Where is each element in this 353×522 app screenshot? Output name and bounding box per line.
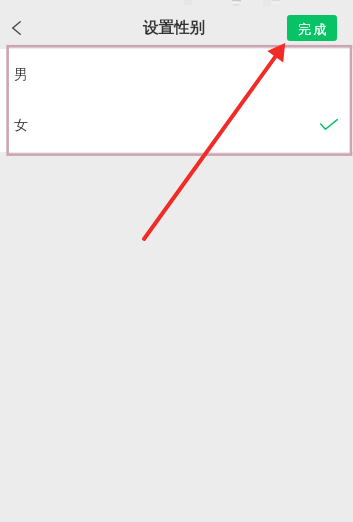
- staticText: 完成: [298, 21, 329, 37]
- button[interactable]: 完成: [287, 15, 337, 41]
- button[interactable]: 男: [0, 49, 353, 100]
- staticText: 设置性别: [143, 18, 205, 38]
- staticText: 女: [14, 117, 28, 135]
- staticText: 男: [14, 66, 28, 84]
- button[interactable]: Back: [0, 8, 32, 48]
- button[interactable]: 女: [0, 100, 353, 151]
